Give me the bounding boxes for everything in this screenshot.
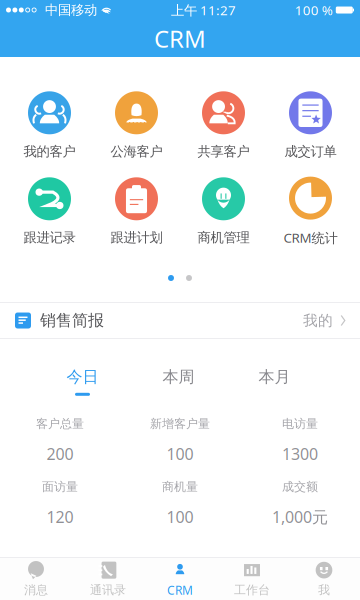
staticText: 消息 <box>24 583 48 597</box>
button[interactable]: 今日 <box>34 363 130 400</box>
staticText: 跟进计划 <box>110 229 162 246</box>
staticText: 200 <box>46 443 73 464</box>
staticText: 共享客户 <box>197 143 249 160</box>
staticText: 通讯录 <box>90 583 126 597</box>
staticText: 1,000元 <box>272 506 328 527</box>
button[interactable]: CRM <box>144 557 216 600</box>
staticText: 100 % <box>295 1 333 19</box>
button[interactable]: CRM统计 <box>267 179 354 244</box>
staticText: 今日 <box>66 367 98 387</box>
button[interactable]: 消息 <box>0 557 72 600</box>
staticText: CRM <box>167 582 193 598</box>
staticText: 工作台 <box>234 583 270 597</box>
staticText: 中国移动 <box>45 2 97 18</box>
staticText: 成交额 <box>282 479 318 494</box>
button[interactable]: 成交订单 <box>267 93 354 158</box>
button[interactable]: 商机管理 <box>180 179 267 244</box>
button[interactable]: 工作台 <box>216 557 288 600</box>
staticText: 公海客户 <box>110 143 162 160</box>
staticText: 我 <box>318 583 330 597</box>
staticText: 本月 <box>258 367 290 387</box>
button[interactable]: 销售简报 <box>0 303 360 338</box>
staticText: CRM <box>154 23 206 54</box>
button[interactable]: 公海客户 <box>93 93 180 158</box>
staticText: 120 <box>46 506 73 527</box>
button[interactable]: 本周 <box>130 363 226 400</box>
button[interactable]: 本月 <box>226 363 322 400</box>
staticText: 商机量 <box>162 479 198 494</box>
staticText: 本周 <box>162 367 194 387</box>
staticText: CRM统计 <box>283 229 337 246</box>
staticText: 新增客户量 <box>150 416 210 431</box>
staticText: 销售简报 <box>40 311 104 330</box>
button[interactable]: 跟进记录 <box>6 179 93 244</box>
staticText: 我的客户 <box>23 143 75 160</box>
staticText: 1300 <box>282 443 318 464</box>
button[interactable]: 通讯录 <box>72 557 144 600</box>
staticText: 客户总量 <box>36 416 84 431</box>
staticText: 商机管理 <box>197 229 249 246</box>
staticText: 100 <box>166 443 193 464</box>
staticText: 100 <box>166 506 193 527</box>
button[interactable]: 共享客户 <box>180 93 267 158</box>
staticText: 成交订单 <box>284 143 336 160</box>
button[interactable]: 我 <box>288 557 360 600</box>
staticText: 上午 11:27 <box>171 1 236 19</box>
staticText: 电访量 <box>282 416 318 431</box>
button[interactable]: 我的客户 <box>6 93 93 158</box>
button[interactable]: 跟进计划 <box>93 179 180 244</box>
staticText: 面访量 <box>42 479 78 494</box>
staticText: 我的 <box>303 311 333 329</box>
staticText: 跟进记录 <box>23 229 75 246</box>
